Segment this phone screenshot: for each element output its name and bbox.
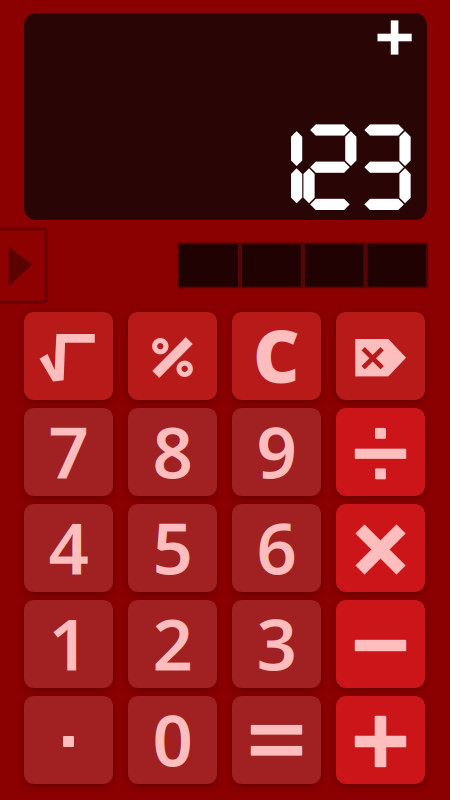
button[interactable]: 8 [128,408,217,496]
button[interactable]: Clear [232,312,321,400]
button[interactable]: Decimal point [24,696,113,784]
button[interactable]: Minus [336,600,425,688]
button[interactable]: 2 [128,600,217,688]
staticText: 4 [48,500,88,594]
button[interactable]: 7 [24,408,113,496]
staticText: 3 [256,596,296,690]
button[interactable]: Backspace [336,312,425,400]
button[interactable]: Divide [336,408,425,496]
staticText: C [253,307,300,403]
staticText: 1 [48,596,88,690]
button[interactable]: Square root [24,312,113,400]
staticText: 6 [256,500,296,594]
button[interactable]: 0 [128,696,217,784]
button[interactable]: Plus [336,696,425,784]
button[interactable]: Multiply [336,504,425,592]
button[interactable]: 6 [232,504,321,592]
button[interactable]: History [0,229,46,302]
button[interactable]: 1 [24,600,113,688]
button[interactable]: 5 [128,504,217,592]
staticText: 8 [152,404,192,498]
staticText: 0 [152,692,192,786]
button[interactable]: Percent [128,312,217,400]
button[interactable]: 4 [24,504,113,592]
staticText: 2 [152,596,192,690]
staticText: 5 [152,500,192,594]
button[interactable]: 3 [232,600,321,688]
staticText: 9 [256,404,296,498]
staticText: 7 [48,404,88,498]
button[interactable]: 9 [232,408,321,496]
button[interactable]: Equals [232,696,321,784]
